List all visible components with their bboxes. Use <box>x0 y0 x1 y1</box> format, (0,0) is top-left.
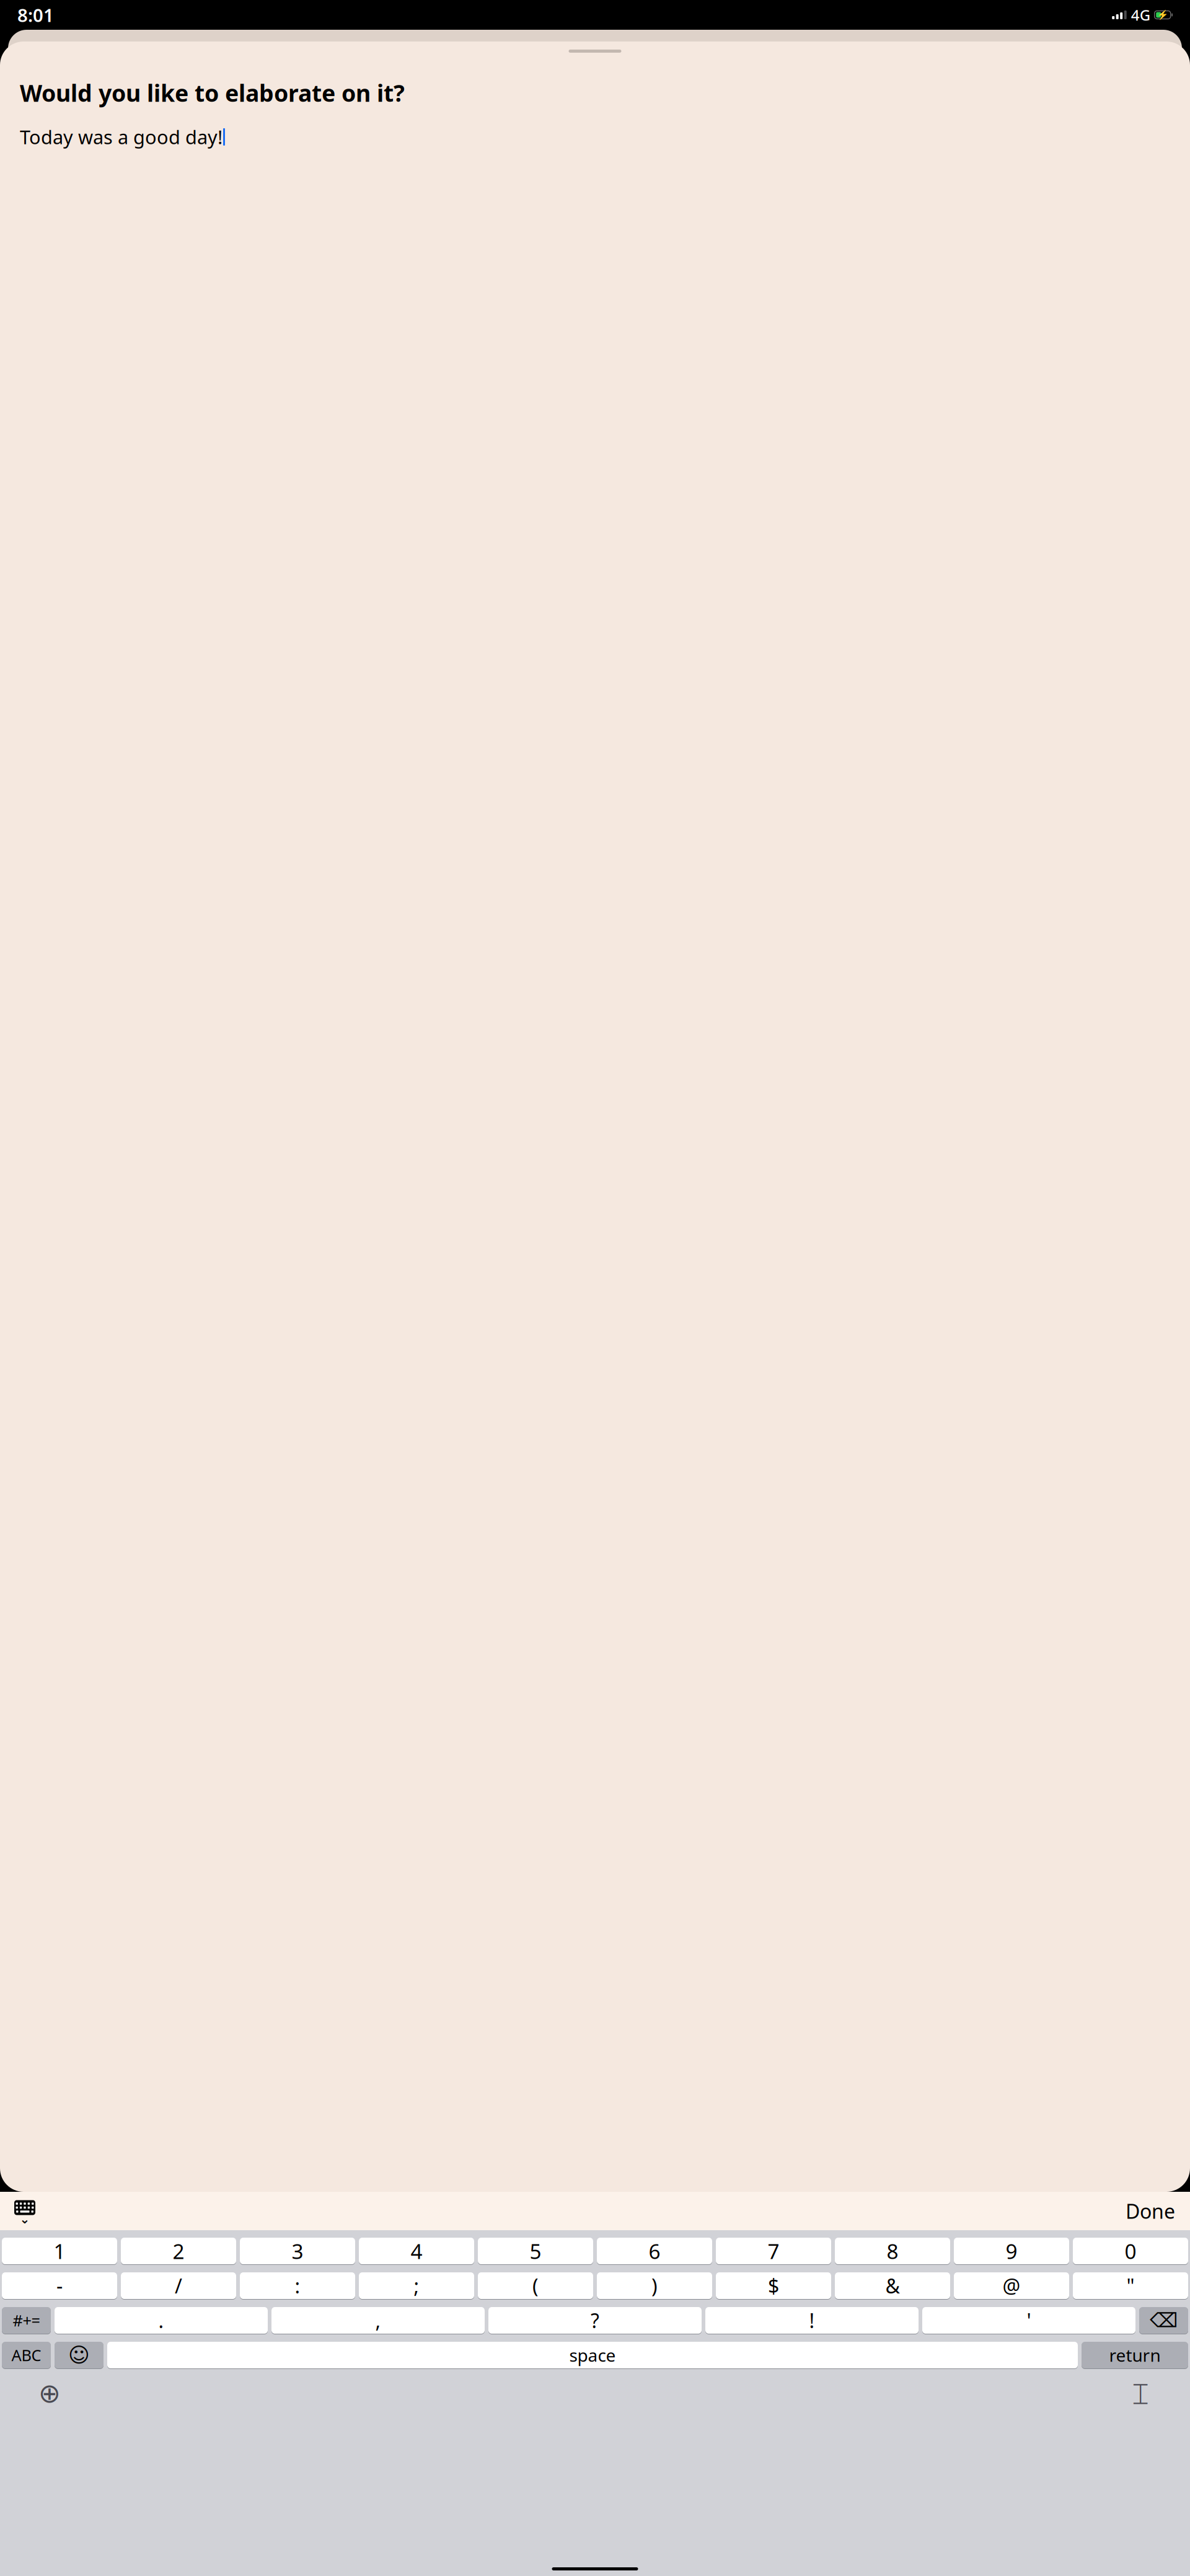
staticText: ! <box>809 2307 815 2334</box>
staticText: 6 <box>649 2237 660 2265</box>
staticText: & <box>885 2273 900 2299</box>
button[interactable]: ) <box>597 2272 712 2300</box>
staticText: #+= <box>13 2310 40 2331</box>
button[interactable]: 2 <box>121 2237 236 2265</box>
staticText: , <box>375 2307 381 2334</box>
staticText: 4 <box>411 2237 422 2265</box>
staticText: 1 <box>54 2237 65 2265</box>
button[interactable]: Dictate <box>1122 2378 1159 2409</box>
button[interactable]: $ <box>716 2272 831 2300</box>
button[interactable]: space <box>107 2341 1078 2369</box>
button[interactable]: Done <box>1126 2194 1190 2228</box>
staticText: 0 <box>1125 2237 1136 2265</box>
button[interactable]: ( <box>478 2272 593 2300</box>
button[interactable]: #+= <box>2 2306 51 2334</box>
button[interactable]: : <box>240 2272 355 2300</box>
staticText: Would you like to elaborate on it? <box>20 77 405 108</box>
button[interactable]: 3 <box>240 2237 355 2265</box>
staticText: 8:01 <box>17 3 54 27</box>
button[interactable]: / <box>121 2272 236 2300</box>
staticText: ( <box>532 2273 539 2299</box>
staticText: 8 <box>887 2237 898 2265</box>
button[interactable]: ! <box>705 2306 919 2334</box>
staticText: ⌄ <box>20 2212 30 2226</box>
staticText: / <box>175 2273 182 2299</box>
staticText: - <box>56 2273 63 2299</box>
button[interactable]: return <box>1082 2341 1188 2369</box>
staticText: 7 <box>768 2237 779 2265</box>
staticText: ⌶ <box>1132 2375 1149 2412</box>
button[interactable]: 8 <box>835 2237 950 2265</box>
button[interactable]: 1 <box>2 2237 117 2265</box>
staticText: 2 <box>173 2237 184 2265</box>
staticText: ⚡ <box>1157 10 1168 20</box>
button[interactable]: 5 <box>478 2237 593 2265</box>
staticText: ' <box>1027 2307 1031 2334</box>
button[interactable]: ABC <box>2 2341 51 2369</box>
staticText: ⌫ <box>1150 2309 1178 2332</box>
staticText: ABC <box>11 2345 41 2365</box>
staticText: : <box>295 2273 300 2299</box>
staticText: return <box>1109 2344 1161 2367</box>
staticText: space <box>569 2344 616 2367</box>
staticText: Done <box>1126 2198 1175 2224</box>
staticText: ; <box>414 2273 419 2299</box>
button[interactable]: ; <box>359 2272 474 2300</box>
staticText: ⊕ <box>38 2378 61 2408</box>
button[interactable]: 0 <box>1073 2237 1188 2265</box>
staticText: ? <box>591 2307 599 2334</box>
button[interactable]: Change keyboard <box>31 2378 68 2409</box>
button[interactable]: @ <box>954 2272 1069 2300</box>
button[interactable]: " <box>1073 2272 1188 2300</box>
staticText: 3 <box>292 2237 303 2265</box>
button[interactable]: & <box>835 2272 950 2300</box>
staticText: 4G <box>1131 5 1150 25</box>
button[interactable]: 9 <box>954 2237 1069 2265</box>
button[interactable]: Delete <box>1139 2306 1188 2334</box>
button[interactable]: 6 <box>597 2237 712 2265</box>
staticText: $ <box>768 2273 779 2299</box>
button[interactable]: ? <box>488 2306 702 2334</box>
button[interactable]: . <box>55 2306 268 2334</box>
staticText: 5 <box>530 2237 541 2265</box>
staticText: ) <box>651 2273 658 2299</box>
staticText: @ <box>1003 2273 1020 2299</box>
staticText: 9 <box>1006 2237 1017 2265</box>
staticText: ☺ <box>68 2343 90 2367</box>
button[interactable]: 7 <box>716 2237 831 2265</box>
button[interactable]: , <box>271 2306 485 2334</box>
button[interactable]: Hide keyboard <box>0 2196 36 2227</box>
staticText: . <box>158 2307 164 2334</box>
button[interactable]: 4 <box>359 2237 474 2265</box>
button[interactable]: - <box>2 2272 117 2300</box>
button[interactable]: Emoji <box>55 2341 104 2369</box>
staticText: Today was a good day! <box>20 124 223 150</box>
button[interactable]: ' <box>922 2306 1135 2334</box>
staticText: " <box>1126 2273 1135 2299</box>
